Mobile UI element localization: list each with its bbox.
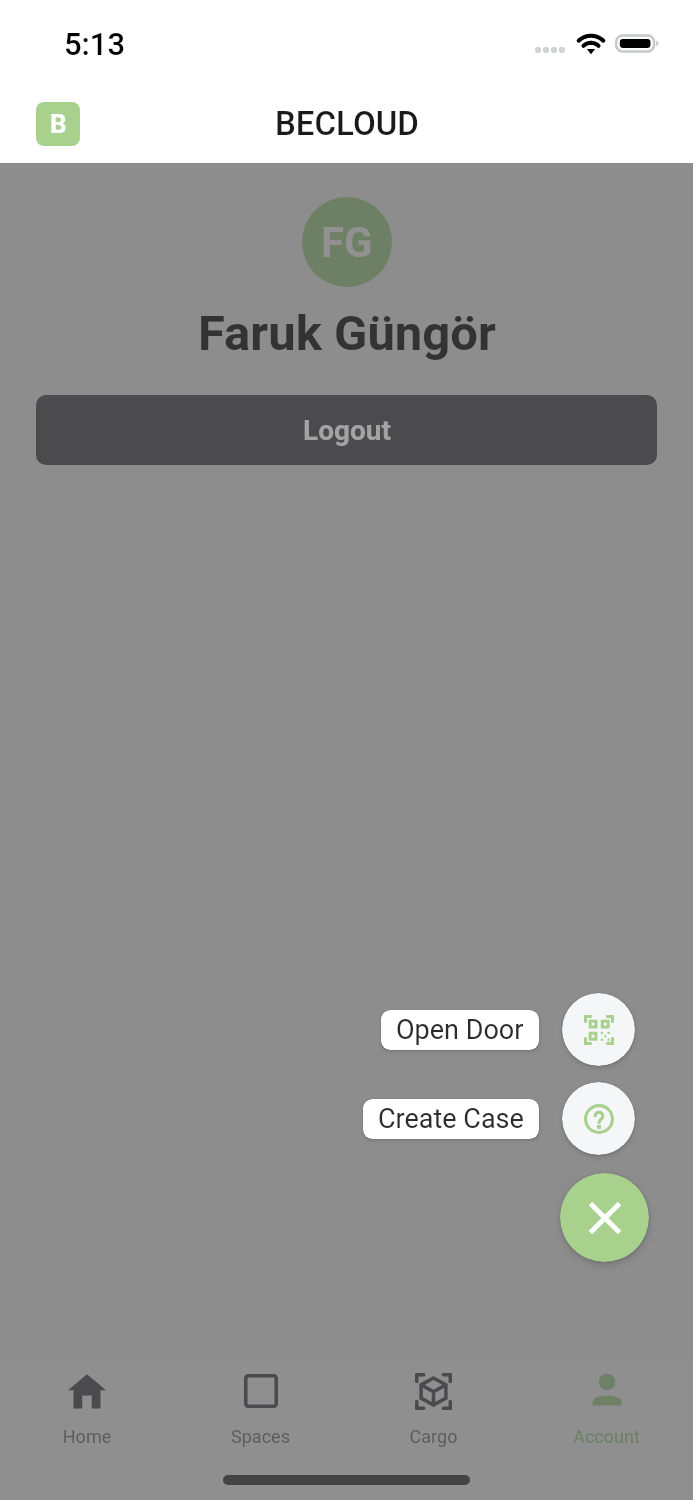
staticText: Open Door xyxy=(396,1014,524,1046)
staticText: Home xyxy=(0,1426,174,1447)
button[interactable]: Create Case xyxy=(562,1082,635,1155)
staticText: B xyxy=(50,109,67,139)
staticText: Spaces xyxy=(174,1426,347,1447)
staticText: FG xyxy=(321,218,373,267)
staticText: 5:13 xyxy=(64,26,126,62)
staticText: Cargo xyxy=(347,1426,520,1447)
staticText: Create Case xyxy=(378,1103,524,1135)
button[interactable]: Spaces xyxy=(174,1371,347,1447)
staticText: BECLOUD xyxy=(275,104,419,143)
button[interactable]: Cargo xyxy=(347,1371,520,1447)
staticText: Faruk Güngör xyxy=(198,305,496,362)
button[interactable]: Open Door xyxy=(562,993,635,1066)
button[interactable]: Close actions menu xyxy=(560,1173,649,1262)
button[interactable]: Create Case xyxy=(363,1099,539,1139)
button[interactable]: Open navigation menu xyxy=(36,102,80,146)
button[interactable]: Logout xyxy=(36,395,657,465)
button[interactable]: Open Door xyxy=(381,1010,539,1050)
staticText: Account xyxy=(520,1426,693,1447)
button[interactable]: Home xyxy=(0,1371,174,1447)
button[interactable]: Account xyxy=(520,1371,693,1447)
staticText: Logout xyxy=(303,414,391,447)
